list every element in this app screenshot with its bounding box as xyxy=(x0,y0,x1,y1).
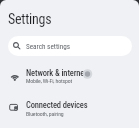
staticText: Mobile, Wi‑Fi, hotspot xyxy=(26,78,73,85)
staticText: Search settings xyxy=(26,42,70,50)
staticText: Network & internet xyxy=(26,68,87,78)
staticText: Settings xyxy=(8,11,52,27)
staticText: Connected devices xyxy=(26,100,88,110)
staticText: Bluetooth, pairing xyxy=(26,111,64,118)
